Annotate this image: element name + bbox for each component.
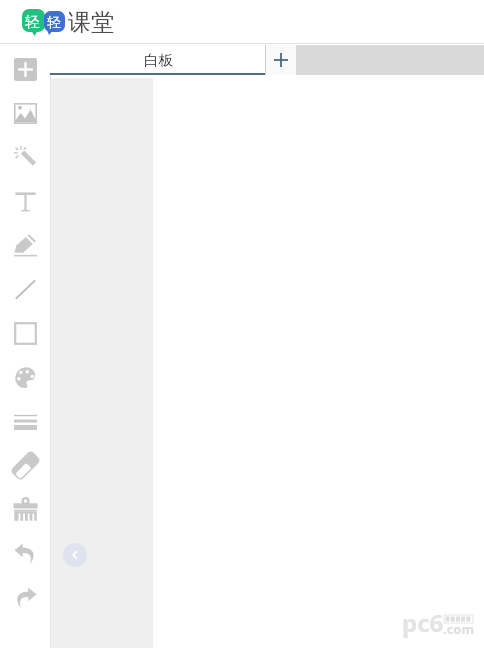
staticText: 轻 xyxy=(47,14,61,32)
button[interactable]: Text xyxy=(0,179,50,223)
button[interactable]: Undo xyxy=(0,531,50,575)
button[interactable]: Add page xyxy=(266,45,296,75)
button[interactable]: Add xyxy=(0,47,50,91)
button[interactable]: Clear board xyxy=(0,487,50,531)
staticText: pc6 xyxy=(402,606,444,639)
button[interactable]: Redo xyxy=(0,575,50,619)
button[interactable]: Collapse panel xyxy=(63,543,87,567)
button[interactable]: Magic wand xyxy=(0,135,50,179)
button[interactable]: Palette xyxy=(0,355,50,399)
button[interactable]: Image xyxy=(0,91,50,135)
staticText: 白板 xyxy=(144,51,173,69)
button[interactable]: Rectangle xyxy=(0,311,50,355)
button[interactable]: Pencil xyxy=(0,223,50,267)
button[interactable]: Eraser xyxy=(0,443,50,487)
staticText: 轻 xyxy=(25,13,40,32)
staticText: 课堂 xyxy=(68,8,114,37)
button[interactable]: Line width xyxy=(0,399,50,443)
button[interactable]: 白板 xyxy=(51,45,265,75)
button[interactable]: Line xyxy=(0,267,50,311)
staticText: .com xyxy=(443,620,475,638)
